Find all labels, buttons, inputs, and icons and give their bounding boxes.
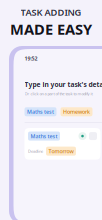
staticText: Tomorrow	[48, 148, 73, 155]
staticText: Maths test	[30, 132, 57, 140]
staticText: Homework	[63, 108, 90, 115]
staticText: MADE EASY	[10, 19, 92, 39]
staticText: Maths test	[27, 108, 54, 115]
staticText: Type in your task's details.	[24, 80, 102, 89]
staticText: Deadline	[28, 148, 43, 154]
staticText: TASK ADDING	[20, 6, 81, 18]
staticText: Or click on a part of the task to modify…	[24, 91, 92, 96]
staticText: 19:52	[24, 55, 37, 62]
